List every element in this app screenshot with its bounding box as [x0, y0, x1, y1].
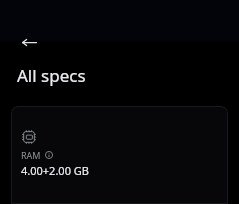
- staticText: 4.00+2.00 GB: [21, 163, 89, 178]
- button[interactable]: Back: [15, 28, 43, 56]
- staticText: All specs: [17, 64, 86, 87]
- button[interactable]: RAM: [11, 106, 228, 204]
- staticText: RAM: [21, 149, 41, 161]
